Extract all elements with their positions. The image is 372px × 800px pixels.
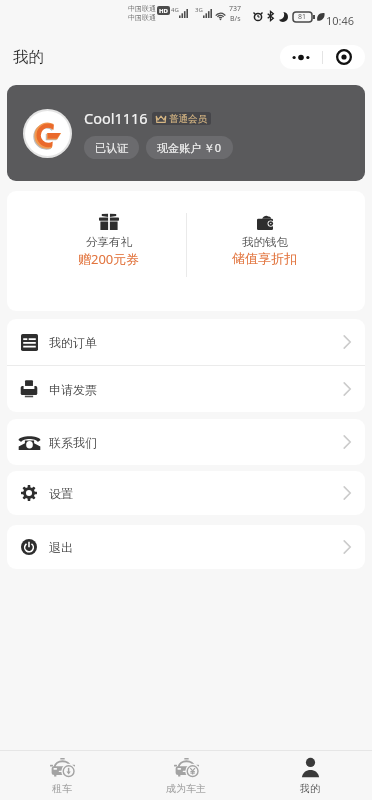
staticText: 我的 (13, 47, 44, 67)
staticText: 中国联通 (128, 13, 156, 22)
staticText: 我的订单 (49, 335, 97, 350)
staticText: 退出 (49, 540, 73, 555)
button[interactable]: 退出 (7, 525, 365, 569)
staticText: 现金账户 ￥0 (157, 140, 222, 155)
button[interactable]: 联系我们 (7, 419, 365, 465)
staticText: 3G (195, 6, 203, 14)
staticText: 联系我们 (49, 435, 97, 450)
button[interactable]: Close (323, 45, 365, 69)
staticText: 10:46 (326, 13, 355, 28)
staticText: HD (159, 7, 168, 15)
staticText: 737 (229, 4, 242, 14)
staticText: 普通会员 (169, 113, 207, 125)
staticText: Cool1116 (84, 108, 148, 128)
staticText: 分享有礼 (86, 235, 132, 249)
staticText: 已认证 (95, 141, 128, 155)
staticText: 赠200元券 (78, 250, 140, 268)
button[interactable]: 我的订单 (7, 319, 365, 365)
button[interactable]: Cool1116 (7, 85, 365, 181)
staticText: 中国联通 (128, 4, 156, 13)
staticText: 租车 (52, 782, 72, 795)
staticText: 4G (171, 6, 179, 14)
staticText: 我的 (300, 782, 320, 795)
button[interactable]: More options (280, 45, 322, 69)
button[interactable]: 申请发票 (7, 366, 365, 412)
button[interactable]: 分享有礼 (31, 191, 186, 311)
button[interactable]: 我的 (248, 751, 372, 800)
staticText: 成为车主 (166, 782, 206, 795)
staticText: 设置 (49, 486, 73, 501)
button[interactable]: 设置 (7, 471, 365, 515)
staticText: 储值享折扣 (232, 250, 297, 266)
button[interactable]: 租车 (0, 751, 124, 800)
button[interactable]: 成为车主 (124, 751, 248, 800)
button[interactable]: 我的钱包 (187, 191, 342, 311)
staticText: 申请发票 (49, 382, 97, 397)
staticText: B/s (230, 14, 241, 24)
staticText: 81 (298, 12, 307, 22)
staticText: 我的钱包 (242, 235, 288, 249)
